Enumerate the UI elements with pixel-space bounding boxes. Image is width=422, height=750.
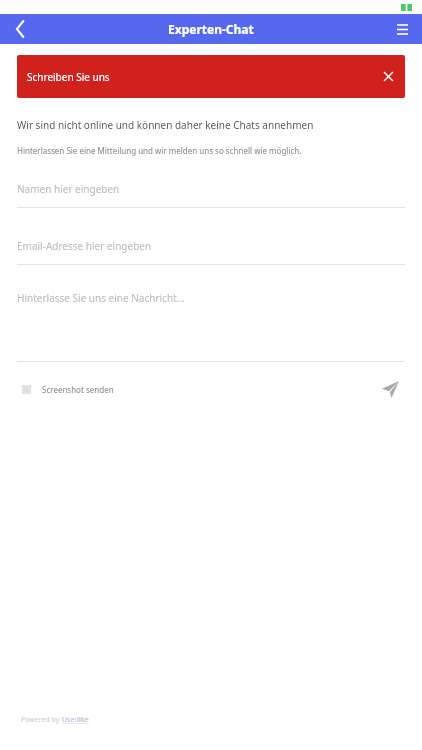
button[interactable]: Email-Adresse hier eingeben (17, 239, 405, 265)
staticText: Namen hier eingeben (17, 182, 120, 196)
staticText: Screenshot senden (42, 384, 114, 395)
staticText: Hinterlasse Sie uns eine Nachricht... (17, 291, 185, 305)
button[interactable]: Back (0, 14, 40, 44)
staticText: Schreiben Sie uns (27, 70, 110, 84)
staticText: Hinterlassen Sie eine Mitteilung und wir… (17, 145, 302, 156)
staticText: Experten-Chat (168, 21, 254, 37)
staticText: Powered by (21, 715, 62, 725)
button[interactable]: Close (371, 55, 405, 98)
button[interactable]: Hinterlasse Sie uns eine Nachricht... (17, 291, 405, 361)
button[interactable]: Screenshot senden (17, 380, 114, 399)
button[interactable]: Userlike (62, 715, 89, 725)
button[interactable]: Send (375, 374, 405, 404)
staticText: Email-Adresse hier eingeben (17, 239, 152, 253)
button[interactable]: Schreiben Sie uns (17, 55, 405, 98)
staticText: Wir sind nicht online und können daher k… (17, 118, 314, 132)
button[interactable]: Menu (382, 14, 422, 44)
button[interactable]: Namen hier eingeben (17, 182, 405, 208)
